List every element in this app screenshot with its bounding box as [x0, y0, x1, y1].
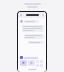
- button[interactable]: [20, 20, 44, 23]
- button[interactable]: Secondary action: [28, 60, 35, 66]
- button[interactable]: [20, 56, 44, 59]
- button[interactable]: [20, 34, 44, 39]
- button[interactable]: Primary action: [20, 60, 27, 66]
- button[interactable]: [20, 41, 44, 44]
- button[interactable]: [20, 25, 44, 32]
